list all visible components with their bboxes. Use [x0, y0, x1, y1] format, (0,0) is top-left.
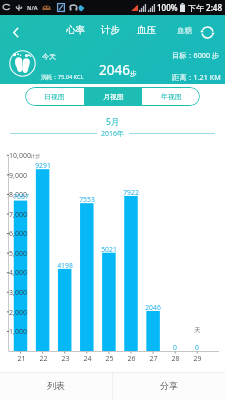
- staticText: 2046: [145, 303, 161, 312]
- staticText: 24: [83, 354, 92, 364]
- staticText: 9,000: [9, 171, 27, 181]
- staticText: 计步: [101, 24, 120, 36]
- staticText: 5,000: [9, 249, 27, 259]
- staticText: 29: [193, 354, 202, 364]
- staticText: 8,000: [9, 190, 27, 200]
- staticText: 消耗：75.04 KCL: [41, 73, 84, 81]
- staticText: 0: [173, 343, 177, 352]
- staticText: 7687: [13, 192, 29, 201]
- button[interactable]: 日视图: [25, 87, 84, 106]
- button[interactable]: 血压: [133, 21, 160, 39]
- button[interactable]: 心率: [62, 21, 89, 39]
- staticText: 0: [195, 343, 199, 352]
- staticText: 27: [149, 354, 158, 364]
- staticText: 10,000: [9, 151, 31, 161]
- staticText: 7922: [123, 188, 139, 197]
- staticText: 26: [127, 354, 136, 364]
- staticText: 21: [17, 354, 26, 364]
- staticText: 1,000: [9, 327, 27, 337]
- staticText: 日视图: [44, 92, 65, 101]
- staticText: 2,000: [9, 308, 27, 318]
- button[interactable]: 年视图: [142, 87, 200, 106]
- staticText: 4,000: [9, 268, 27, 278]
- staticText: 目标：6000 步: [172, 50, 220, 60]
- button[interactable]: 列表: [0, 373, 112, 400]
- button[interactable]: 血糖: [174, 23, 195, 38]
- staticText: 2016年: [101, 129, 125, 139]
- button[interactable]: 计步: [97, 21, 124, 39]
- staticText: 步: [130, 70, 137, 78]
- staticText: 25: [105, 354, 114, 364]
- staticText: 7553: [79, 195, 95, 204]
- button[interactable]: 分享: [113, 373, 225, 400]
- staticText: 4198: [57, 261, 73, 270]
- staticText: 5月: [106, 116, 120, 128]
- button[interactable]: 月视图: [84, 87, 142, 106]
- staticText: 计步: [30, 153, 41, 160]
- staticText: 23: [61, 354, 70, 364]
- staticText: 血压: [137, 24, 156, 36]
- staticText: 22: [39, 354, 48, 364]
- staticText: 年视图: [161, 92, 182, 101]
- staticText: 月视图: [103, 92, 124, 101]
- staticText: 7,000: [9, 210, 27, 220]
- staticText: 列表: [47, 380, 65, 391]
- staticText: 2046: [99, 61, 130, 79]
- staticText: 天: [194, 326, 201, 334]
- staticText: 6,000: [9, 229, 27, 239]
- staticText: 今天: [42, 52, 56, 61]
- staticText: 下午 2:48: [188, 2, 222, 13]
- staticText: 100%: [157, 2, 178, 13]
- staticText: 9291: [35, 161, 51, 170]
- staticText: 分享: [160, 380, 178, 391]
- staticText: 28: [171, 354, 180, 364]
- staticText: 血糖: [177, 26, 192, 35]
- button[interactable]: Back: [4, 21, 27, 44]
- staticText: 5021: [101, 245, 117, 254]
- button[interactable]: Refresh: [197, 22, 217, 42]
- staticText: 距离：1.21 KM: [172, 72, 221, 82]
- staticText: 3,000: [9, 288, 27, 298]
- staticText: N/A: [27, 4, 38, 11]
- staticText: 心率: [66, 24, 85, 36]
